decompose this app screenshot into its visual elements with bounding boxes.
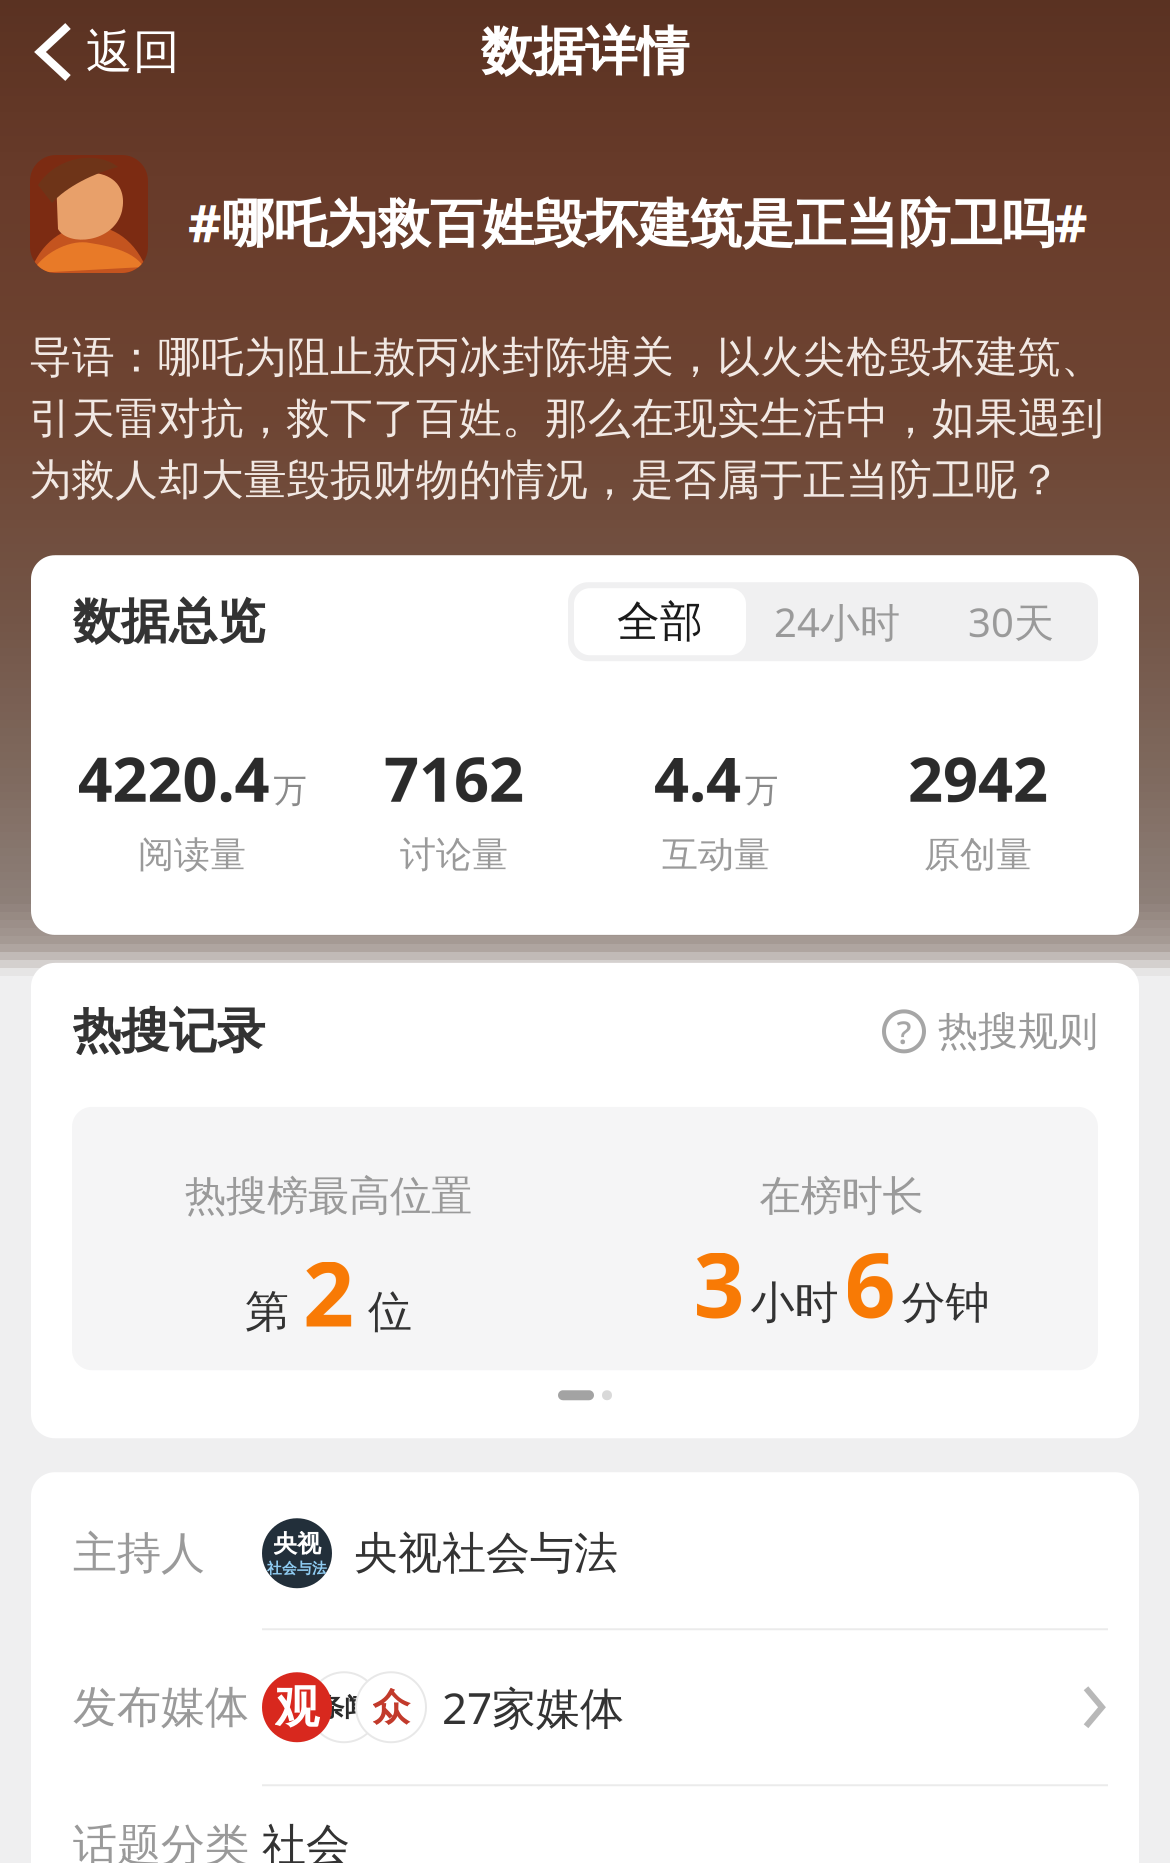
staticText: 导语：哪吒为阻止敖丙冰封陈塘关，以火尖枪毁坏建筑、引天雷对抗，救下了百姓。那么在…: [29, 331, 1104, 506]
staticText: 众: [372, 1684, 409, 1730]
staticText: 社会与法: [267, 1559, 327, 1577]
staticText: 30天: [968, 595, 1054, 648]
staticText: 热搜规则: [938, 1007, 1098, 1056]
staticText: 3: [693, 1224, 744, 1342]
staticText: 数据详情: [481, 20, 689, 84]
button[interactable]: 返回: [34, 21, 180, 83]
staticText: 热搜记录: [73, 1002, 265, 1061]
staticText: 24小时: [774, 595, 900, 648]
staticText: 第: [245, 1285, 289, 1339]
staticText: 互动量: [662, 833, 770, 877]
staticText: 阅读量: [138, 833, 246, 877]
staticText: 位: [368, 1285, 412, 1339]
staticText: 观: [275, 1680, 319, 1734]
button[interactable]: 发布媒体: [73, 1630, 1108, 1784]
button[interactable]: 全部: [574, 588, 746, 655]
button[interactable]: 30天: [928, 588, 1094, 655]
staticText: 原创量: [924, 833, 1032, 877]
staticText: ?: [896, 1009, 911, 1053]
staticText: 热搜榜最高位置: [185, 1171, 472, 1222]
staticText: 数据总览: [73, 592, 265, 651]
staticText: 4220.4: [77, 737, 269, 819]
staticText: 全部: [617, 595, 703, 648]
staticText: 央视社会与法: [354, 1526, 618, 1580]
staticText: 2942: [908, 737, 1048, 819]
staticText: 话题分类: [73, 1818, 249, 1863]
staticText: 主持人: [73, 1526, 205, 1580]
staticText: 6: [844, 1224, 895, 1342]
staticText: 分钟: [901, 1276, 989, 1330]
staticText: 2: [303, 1233, 354, 1351]
staticText: #哪吒为救百姓毁坏建筑是正当防卫吗#: [188, 187, 1088, 257]
staticText: 在榜时长: [759, 1171, 923, 1222]
staticText: 小时: [750, 1276, 838, 1330]
staticText: 条闻: [319, 1692, 369, 1723]
staticText: 7162: [384, 737, 524, 819]
staticText: 讨论量: [400, 833, 508, 877]
staticText: 27家媒体: [442, 1678, 624, 1736]
staticText: 万: [273, 770, 306, 811]
staticText: 返回: [86, 23, 180, 81]
staticText: 万: [745, 770, 778, 811]
button[interactable]: 24小时: [746, 588, 928, 655]
staticText: 社会: [262, 1818, 350, 1863]
button[interactable]: ?: [882, 1007, 1098, 1056]
staticText: 发布媒体: [73, 1680, 249, 1734]
staticText: 央视: [273, 1529, 321, 1558]
staticText: 4.4: [654, 737, 741, 819]
